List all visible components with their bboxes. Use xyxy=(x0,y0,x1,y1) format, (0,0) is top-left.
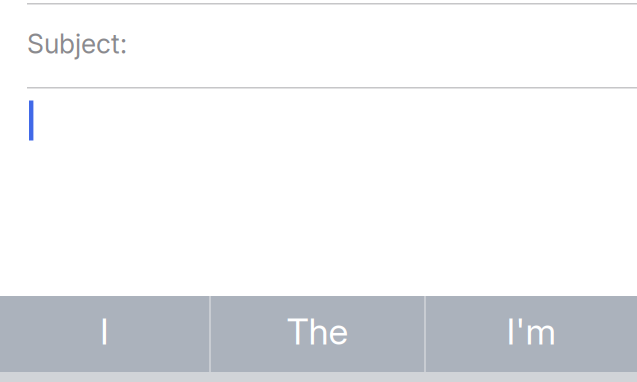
staticText: Subject: xyxy=(27,28,127,60)
button[interactable]: I'm xyxy=(426,296,637,372)
staticText: I xyxy=(100,310,109,353)
button[interactable]: I xyxy=(0,296,209,372)
staticText: The xyxy=(286,310,348,353)
button[interactable]: Message body xyxy=(0,88,637,148)
button[interactable]: Subject: xyxy=(0,4,637,87)
staticText: I'm xyxy=(506,310,556,353)
button[interactable]: The xyxy=(211,296,424,372)
